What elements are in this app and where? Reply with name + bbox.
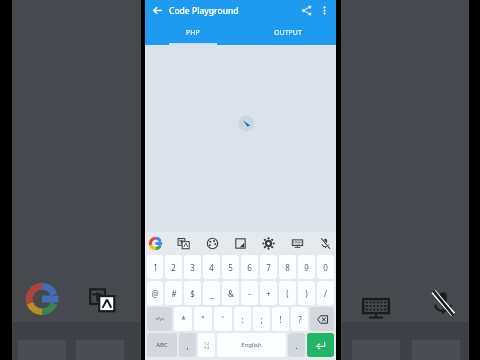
button[interactable]: Back	[150, 3, 165, 18]
staticText: 1 2 3 4	[204, 341, 209, 350]
staticText: '	[222, 314, 224, 325]
button[interactable]: Settings	[262, 237, 275, 250]
button[interactable]: Numbers	[198, 333, 215, 357]
button[interactable]: /	[317, 281, 334, 305]
button[interactable]: =\<	[147, 307, 172, 331]
staticText: 2	[171, 262, 176, 273]
staticText: English	[241, 341, 262, 349]
button[interactable]: 0	[317, 255, 334, 279]
button[interactable]: 3	[184, 255, 201, 279]
staticText: $	[190, 288, 195, 299]
staticText: ?	[298, 314, 302, 325]
staticText: 4	[209, 262, 214, 273]
staticText: @	[151, 288, 159, 299]
staticText: 6	[247, 262, 252, 273]
button[interactable]: *	[174, 307, 192, 331]
staticText: *	[181, 314, 186, 325]
button[interactable]: ?	[291, 307, 308, 331]
staticText: ;	[260, 314, 263, 325]
button[interactable]: +	[260, 281, 277, 305]
staticText: ABC	[156, 341, 168, 349]
button[interactable]: 4	[203, 255, 220, 279]
button[interactable]: $	[184, 281, 201, 305]
button[interactable]: OUTPUT	[240, 21, 336, 45]
button[interactable]: '	[214, 307, 232, 331]
button[interactable]: Stickers	[206, 237, 219, 250]
staticText: 8	[285, 262, 290, 273]
button[interactable]: @	[147, 281, 163, 305]
button[interactable]: 1	[147, 255, 163, 279]
staticText: +	[266, 288, 271, 299]
button[interactable]: Share	[299, 3, 314, 18]
staticText: _	[210, 288, 214, 299]
staticText: )	[305, 288, 308, 299]
button[interactable]: Backspace	[310, 307, 334, 331]
button[interactable]: Translate	[177, 237, 190, 250]
staticText: 0	[323, 262, 328, 273]
staticText: ,	[186, 340, 189, 351]
staticText: #	[171, 288, 177, 299]
button[interactable]: PHP	[145, 21, 240, 45]
staticText: .	[295, 340, 298, 351]
button[interactable]: -	[241, 281, 258, 305]
button[interactable]: 2	[165, 255, 182, 279]
button[interactable]: 5	[222, 255, 239, 279]
button[interactable]: #	[165, 281, 182, 305]
staticText: -	[248, 288, 251, 299]
staticText: 3	[190, 262, 195, 273]
button[interactable]: 6	[241, 255, 258, 279]
button[interactable]: English	[217, 333, 286, 357]
button[interactable]	[145, 45, 336, 232]
button[interactable]: &	[222, 281, 239, 305]
button[interactable]: 7	[260, 255, 277, 279]
button[interactable]: :	[234, 307, 251, 331]
button[interactable]: .	[288, 333, 305, 357]
button[interactable]: ;	[253, 307, 270, 331]
button[interactable]: 9	[298, 255, 315, 279]
button[interactable]: "	[194, 307, 212, 331]
staticText: (	[286, 288, 289, 299]
button[interactable]: !	[272, 307, 289, 331]
button[interactable]: More options	[318, 4, 331, 17]
button[interactable]: ,	[179, 333, 196, 357]
staticText: =\<	[155, 315, 165, 323]
staticText: 7	[266, 262, 271, 273]
button[interactable]: 8	[279, 255, 296, 279]
button[interactable]: Enter	[307, 333, 334, 357]
button[interactable]: One-handed mode	[291, 237, 304, 250]
staticText: PHP	[186, 28, 200, 38]
staticText: :	[241, 314, 244, 325]
staticText: OUTPUT	[274, 28, 302, 38]
button[interactable]: Google	[149, 237, 162, 250]
button[interactable]: (	[279, 281, 296, 305]
button[interactable]: Clipboard	[234, 237, 247, 250]
button[interactable]: Voice input off	[319, 237, 332, 250]
staticText: 1	[153, 262, 158, 273]
staticText: !	[279, 314, 282, 325]
button[interactable]: ABC	[147, 333, 177, 357]
button[interactable]: )	[298, 281, 315, 305]
staticText: &	[228, 288, 234, 299]
staticText: 9	[304, 262, 309, 273]
staticText: /	[324, 288, 327, 299]
staticText: Code Playground	[169, 5, 239, 17]
staticText: "	[201, 314, 205, 325]
staticText: 5	[228, 262, 233, 273]
button[interactable]: _	[203, 281, 220, 305]
